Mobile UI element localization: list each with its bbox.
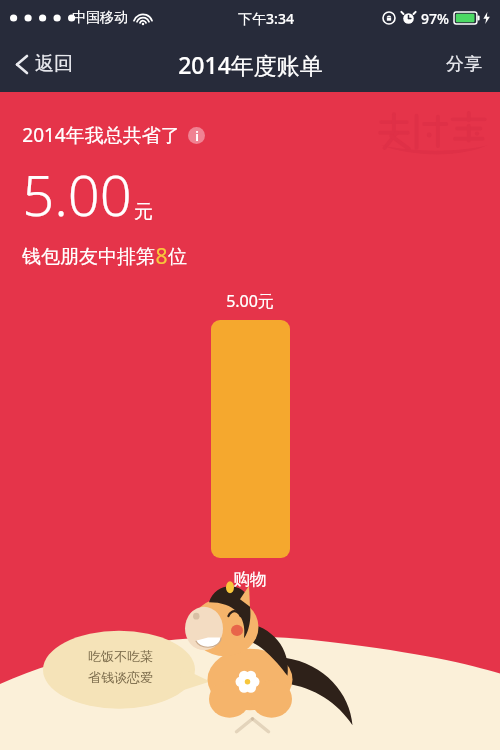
staticText: 购物: [233, 569, 267, 590]
staticText: 位: [168, 245, 187, 269]
staticText: 5.00元: [226, 290, 274, 312]
staticText: 返回: [35, 52, 73, 76]
button[interactable]: Info: [188, 127, 205, 144]
staticText: 8: [155, 242, 168, 271]
button[interactable]: 分享: [428, 43, 500, 86]
button[interactable]: 返回: [0, 44, 87, 84]
staticText: 中国移动: [72, 9, 128, 27]
staticText: 2014年我总共省了: [22, 122, 180, 148]
staticText: 吃饭不吃菜: [88, 648, 153, 664]
staticText: 5.00: [22, 156, 132, 232]
button[interactable]: 购物 5.00元: [211, 320, 290, 558]
staticText: 2014年度账单: [178, 49, 323, 80]
staticText: 下午3:34: [238, 9, 294, 28]
staticText: 钱包朋友中排第: [22, 245, 155, 269]
button[interactable]: 吃饭不吃菜: [68, 648, 172, 685]
staticText: 元: [134, 200, 153, 224]
staticText: 97%: [421, 9, 449, 28]
staticText: i: [195, 128, 199, 144]
staticText: 省钱谈恋爱: [88, 669, 153, 685]
staticText: 分享: [446, 53, 482, 76]
